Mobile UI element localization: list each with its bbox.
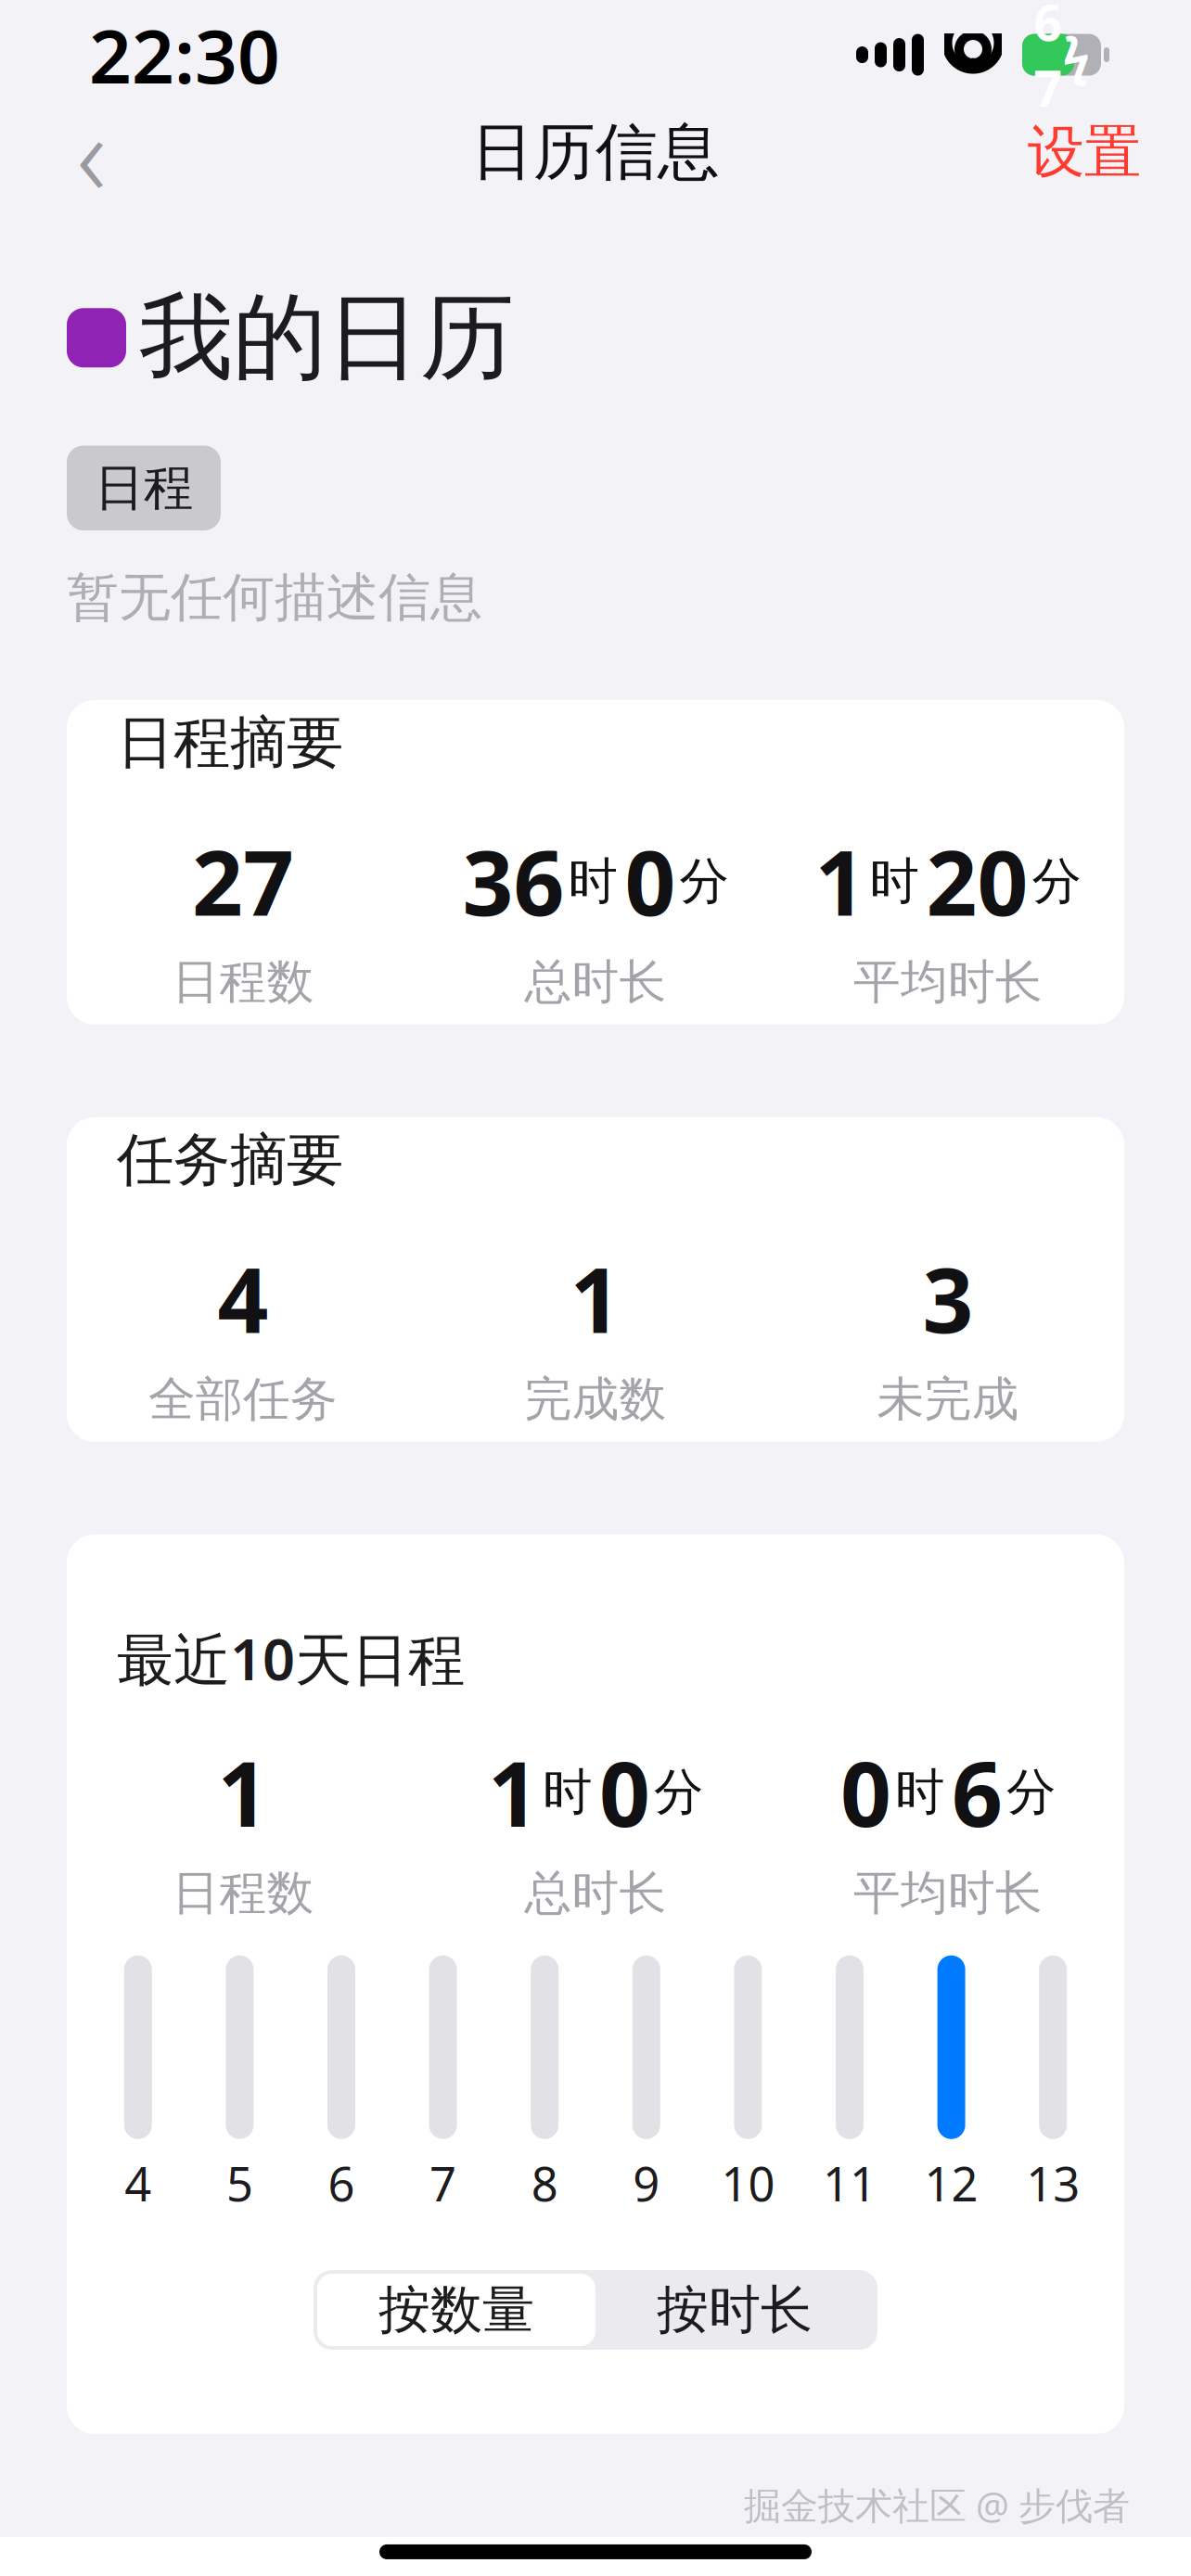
staticText: ‹ [77,77,107,228]
staticText: 未完成 [877,1371,1019,1428]
staticText: 总时长 [525,953,666,1011]
staticText: 分 [679,851,729,912]
staticText: 时 [568,851,617,912]
staticText: 22:30 [89,5,280,104]
staticText: 掘金技术社区 @ 步伐者 [744,2480,1130,2530]
staticText: 1 [815,822,866,940]
staticText: 1 [218,1733,269,1851]
staticText: 0 [599,1733,650,1851]
staticText: 分 [654,1762,703,1823]
staticText: 6 [328,2152,355,2214]
staticText: 设置 [1028,117,1141,187]
staticText: 5 [226,2152,253,2214]
staticText: 13 [1026,2152,1080,2214]
staticText: 按数量 [378,2278,534,2342]
staticText: 3 [922,1239,973,1358]
button[interactable]: 按时长 [595,2274,874,2346]
button[interactable]: 按数量 [317,2274,595,2346]
staticText: 1 [488,1733,539,1851]
staticText: 最近10天日程 [117,1621,465,1696]
staticText: 全部任务 [148,1371,338,1428]
button[interactable]: 设置 [1018,101,1150,203]
staticText: 1 [570,1239,621,1358]
staticText: 时 [543,1762,592,1823]
staticText: 日程数 [172,953,314,1011]
staticText: 12 [924,2152,978,2214]
staticText: 0 [625,822,676,940]
staticText: 0 [840,1733,891,1851]
staticText: 总时长 [525,1864,666,1922]
staticText: 暂无任何描述信息 [67,566,482,629]
staticText: 67 [1034,0,1063,120]
staticText: 11 [823,2152,877,2214]
staticText: 27 [192,822,294,940]
staticText: 按时长 [657,2278,813,2342]
staticText: 日历信息 [471,114,720,190]
button[interactable]: 返回 [41,101,143,203]
staticText: 7 [430,2152,456,2214]
staticText: 分 [1032,851,1081,912]
staticText: 4 [218,1239,269,1358]
staticText: 8 [531,2152,558,2214]
staticText: 日程摘要 [117,708,343,778]
staticText: 任务摘要 [117,1125,343,1195]
staticText: 9 [633,2152,660,2214]
staticText: 我的日历 [139,280,514,396]
staticText: 日程数 [172,1864,314,1922]
staticText: 时 [895,1762,944,1823]
staticText: 36 [462,822,564,940]
staticText: 10 [721,2152,775,2214]
staticText: 完成数 [525,1371,666,1428]
staticText: 6 [952,1733,1003,1851]
staticText: 4 [125,2152,151,2214]
staticText: 20 [926,822,1028,940]
staticText: 日程 [95,458,193,518]
staticText: 分 [1006,1762,1056,1823]
staticText: 平均时长 [853,1864,1043,1922]
staticText: ϟ [1063,22,1089,88]
staticText: 平均时长 [853,953,1043,1011]
staticText: 时 [870,851,919,912]
